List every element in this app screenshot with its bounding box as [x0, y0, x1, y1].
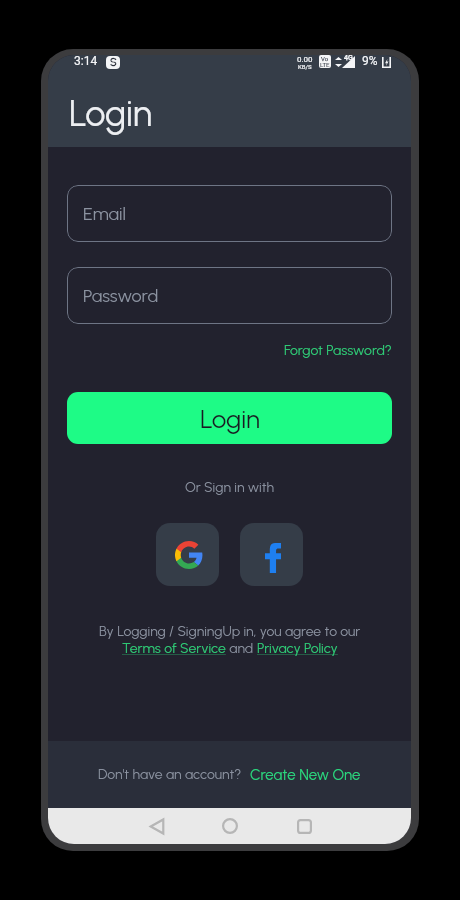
staticText: 0.00: [297, 55, 313, 64]
staticText: LTE: [320, 61, 330, 67]
button[interactable]: Sign in with Google: [156, 523, 219, 586]
staticText: Don't have an account?: [98, 766, 242, 783]
staticText: 9%: [362, 55, 378, 68]
button[interactable]: Home: [212, 808, 248, 844]
staticText: By Logging / SigningUp in, you agree to …: [99, 623, 361, 640]
button[interactable]: Email: [67, 185, 392, 242]
staticText: Or Sign in with: [185, 479, 275, 496]
button[interactable]: Sign in with Facebook: [240, 523, 303, 586]
button[interactable]: Terms of Service: [122, 640, 226, 657]
staticText: Password: [83, 285, 159, 307]
button[interactable]: Create New One: [250, 766, 361, 784]
staticText: 3:14: [74, 55, 98, 68]
button[interactable]: Forgot Password?: [284, 342, 392, 359]
button[interactable]: Recent apps: [286, 808, 322, 844]
staticText: and: [226, 640, 257, 657]
button[interactable]: Back: [139, 808, 175, 844]
button[interactable]: Login: [67, 392, 392, 444]
staticText: Vo: [321, 55, 329, 62]
staticText: S: [110, 56, 117, 69]
button[interactable]: Password: [67, 267, 392, 324]
staticText: KB/S: [298, 63, 312, 70]
staticText: Login: [200, 403, 260, 434]
staticText: Email: [83, 203, 126, 225]
button[interactable]: Privacy Policy: [257, 640, 338, 657]
staticText: Login: [69, 92, 153, 135]
staticText: 4G: [344, 55, 353, 62]
